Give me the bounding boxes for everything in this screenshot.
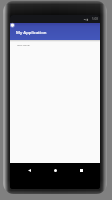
button[interactable]: Home (49, 164, 61, 176)
staticText: 5:08 (92, 17, 98, 21)
button[interactable]: Recent apps (75, 164, 87, 176)
staticText: Hello World! (17, 44, 30, 47)
button[interactable]: Back (23, 164, 35, 176)
staticText: My Application (16, 29, 47, 35)
